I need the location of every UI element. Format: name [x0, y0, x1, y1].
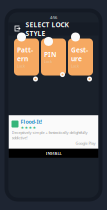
button[interactable]: PIN	[41, 38, 66, 75]
staticText: Deceptively simple + fantastically delig…	[11, 130, 87, 140]
staticText: Lock	[17, 63, 25, 68]
staticText: SELECT LOCK STYLE	[25, 20, 68, 38]
staticText: Gesture	[71, 45, 88, 63]
button[interactable]: Back	[13, 25, 21, 33]
staticText: Flood-It!	[20, 118, 42, 125]
staticText: 4:56	[50, 15, 57, 20]
staticText: Lock	[71, 63, 79, 68]
staticText: ★★★★	[20, 125, 36, 130]
staticText: Google Play	[75, 140, 95, 146]
staticText: PIN	[44, 50, 56, 59]
button[interactable]: INSTALL	[8, 149, 98, 158]
staticText: Lock	[44, 59, 52, 64]
button[interactable]: Gesture	[68, 38, 93, 75]
staticText: INSTALL	[45, 151, 61, 156]
staticText: Pattern	[17, 45, 33, 63]
button[interactable]: Pattern	[14, 38, 39, 75]
